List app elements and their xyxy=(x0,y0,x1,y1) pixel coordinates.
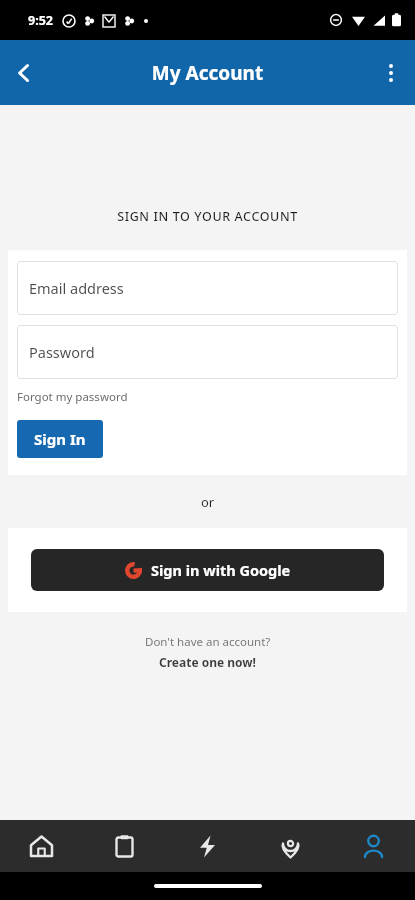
button[interactable]: Locations xyxy=(249,820,332,872)
staticText: Sign in with Google xyxy=(151,560,291,580)
staticText: Forgot my password xyxy=(17,389,128,405)
button[interactable]: Sign In xyxy=(17,420,103,458)
staticText: My Account xyxy=(0,60,415,86)
staticText: Sign In xyxy=(34,429,86,449)
button[interactable]: Don't have an account? xyxy=(0,634,415,670)
button[interactable]: More options xyxy=(367,49,415,97)
staticText: Email address xyxy=(29,278,124,298)
staticText: SIGN IN TO YOUR ACCOUNT xyxy=(0,208,415,225)
button[interactable]: Sign in with Google xyxy=(31,549,384,591)
button[interactable]: Charging xyxy=(166,820,249,872)
button[interactable]: Orders xyxy=(83,820,166,872)
button[interactable]: Email address xyxy=(17,261,398,315)
button[interactable]: Home xyxy=(0,820,83,872)
button[interactable]: Account xyxy=(332,820,415,872)
staticText: 9:52 xyxy=(28,12,53,29)
staticText: Don't have an account? xyxy=(145,634,271,650)
staticText: or xyxy=(0,493,415,511)
staticText: Create one now! xyxy=(159,654,256,670)
staticText: Password xyxy=(29,342,95,362)
button[interactable]: Back xyxy=(0,49,48,97)
button[interactable]: Forgot my password xyxy=(17,388,128,406)
button[interactable]: Password xyxy=(17,325,398,379)
